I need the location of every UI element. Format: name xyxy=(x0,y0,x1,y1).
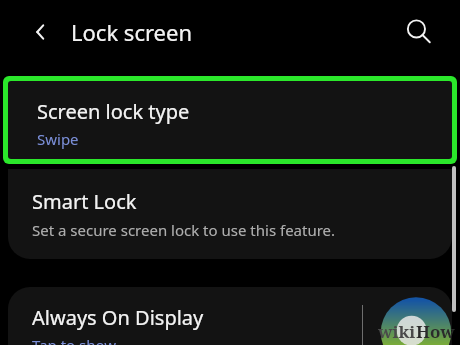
staticText: Always On Display xyxy=(32,304,204,331)
button[interactable]: Back xyxy=(20,11,62,53)
staticText: Screen lock type xyxy=(37,98,190,125)
staticText: How xyxy=(416,320,455,343)
staticText: wiki xyxy=(378,320,416,343)
staticText: Set a secure screen lock to use this fea… xyxy=(32,220,336,240)
button[interactable]: Screen lock type xyxy=(3,76,457,164)
staticText: Tap to show xyxy=(32,335,117,345)
button[interactable]: Always On Display xyxy=(8,287,452,345)
staticText: Lock screen xyxy=(71,17,193,47)
button[interactable]: Smart Lock xyxy=(8,169,452,259)
staticText: Smart Lock xyxy=(32,188,137,215)
button[interactable]: Search xyxy=(396,9,440,53)
staticText: Swipe xyxy=(37,129,79,149)
